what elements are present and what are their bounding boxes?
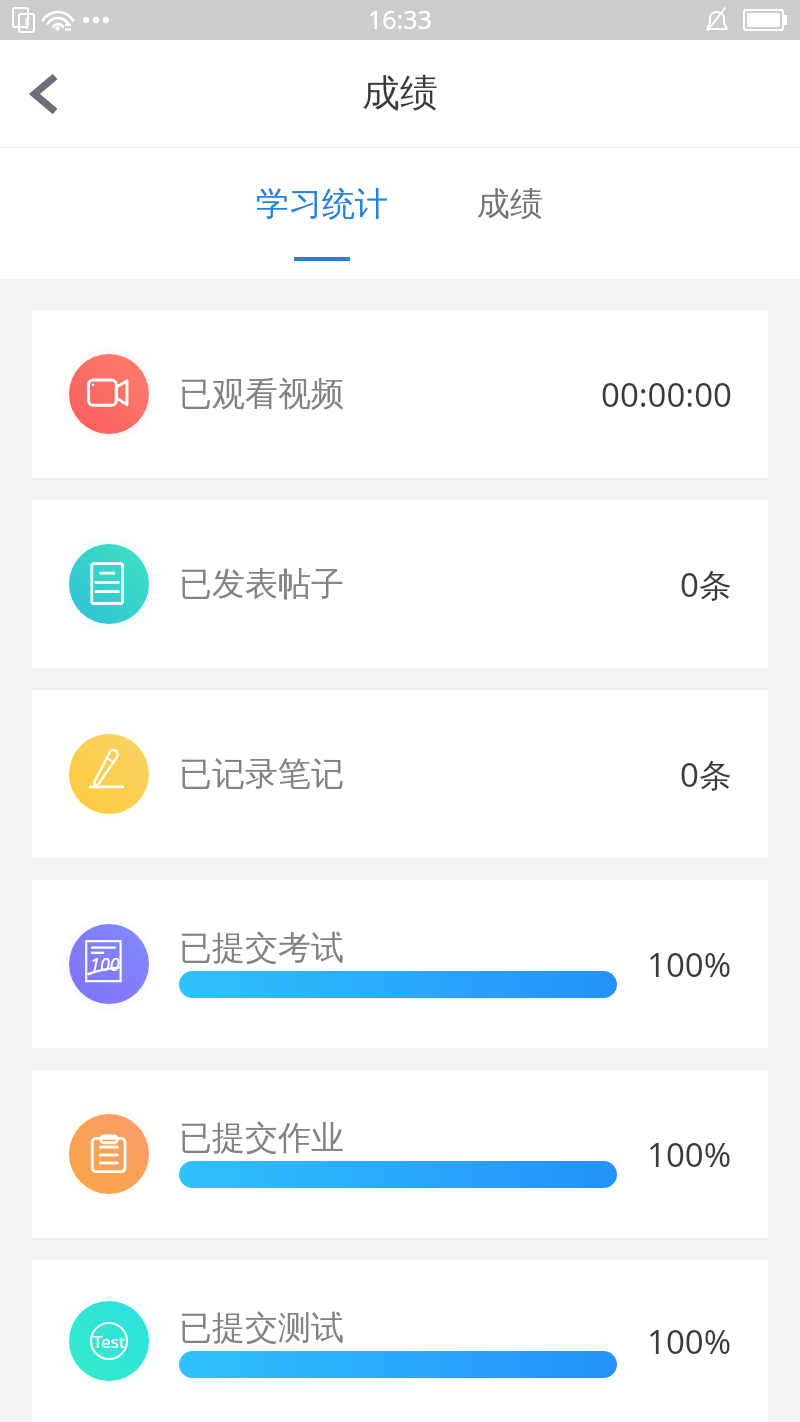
staticText: 已发表帖子 <box>179 563 344 605</box>
button[interactable]: 已观看视频 <box>32 310 768 478</box>
staticText: 已提交考试 <box>179 927 344 969</box>
staticText: 0条 <box>680 562 732 607</box>
button[interactable]: 成绩 <box>440 148 580 279</box>
staticText: 已记录笔记 <box>179 753 344 795</box>
staticText: 学习统计 <box>256 183 388 225</box>
staticText: 100% <box>647 1319 732 1364</box>
button[interactable]: 学习统计 <box>242 148 402 279</box>
staticText: 已提交测试 <box>179 1307 344 1349</box>
button[interactable]: Test <box>32 1260 768 1422</box>
staticText: Test <box>93 1330 126 1353</box>
button[interactable]: 100 <box>32 880 768 1048</box>
staticText: 100 <box>90 952 120 977</box>
button[interactable]: 已提交作业 <box>32 1070 768 1238</box>
button[interactable]: 已记录笔记 <box>32 690 768 858</box>
button[interactable]: 已发表帖子 <box>32 500 768 668</box>
staticText: 成绩 <box>477 183 543 225</box>
staticText: 0条 <box>680 752 732 797</box>
button[interactable]: Back <box>0 40 90 148</box>
staticText: 16:33 <box>368 2 432 36</box>
staticText: 已观看视频 <box>179 373 344 415</box>
staticText: 已提交作业 <box>179 1117 344 1159</box>
staticText: 00:00:00 <box>601 372 732 417</box>
staticText: 100% <box>647 1132 732 1177</box>
staticText: 成绩 <box>362 69 438 117</box>
staticText: 100% <box>647 942 732 987</box>
